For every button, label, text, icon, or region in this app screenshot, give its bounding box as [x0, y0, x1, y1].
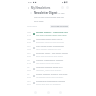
staticText: 9:41 ▪ ▪	[28, 1, 37, 4]
staticText: 4:02	[27, 69, 31, 72]
staticText: each week.	[34, 20, 44, 23]
staticText: Sun	[27, 45, 31, 48]
button[interactable]: Mon	[25, 30, 71, 37]
button[interactable]: Fri	[25, 65, 71, 72]
staticText: Newsletter Digest	[34, 11, 58, 15]
staticText: Sun	[27, 52, 31, 55]
button[interactable]: Back	[27, 6, 30, 9]
staticText: ▴ ● ▮	[62, 1, 68, 4]
staticText: ‹	[28, 6, 29, 9]
staticText: Sat	[27, 59, 30, 62]
staticText: Front-end and UX insights	[36, 83, 61, 86]
staticText: Fri	[27, 66, 30, 69]
staticText: Mon	[27, 38, 32, 41]
staticText: 9:12	[27, 34, 31, 37]
staticText: Hacker Newsletter weekly	[36, 59, 64, 62]
staticText: Language news and samples	[36, 76, 64, 79]
staticText: Fri	[27, 73, 30, 76]
staticText: Stay on top of the stories that you foll…	[34, 16, 69, 19]
staticText: Kotlin Weekly #398 is out now	[36, 73, 68, 76]
staticText: Tech stories picked for you	[36, 48, 62, 51]
staticText: 12 May 2024	[58, 12, 69, 15]
staticText: 5:18	[27, 62, 31, 65]
button[interactable]: Thu	[25, 79, 71, 86]
staticText: Mon	[27, 31, 32, 34]
staticText: Design Weekly · New issue out	[36, 31, 68, 34]
staticText: Business news in five minutes	[36, 41, 64, 44]
staticText: Morning Brew sent you a digest	[36, 38, 69, 41]
staticText: 7:55	[27, 48, 31, 51]
staticText: Best new products this week	[36, 55, 63, 58]
button[interactable]: Sat	[25, 58, 71, 65]
staticText: 2:21	[27, 83, 31, 86]
staticText: 6:30	[27, 55, 31, 58]
staticText: Product Hunt · Top picks today	[36, 52, 68, 55]
staticText: My Newsletters	[31, 6, 51, 10]
button[interactable]: MANAGE SOURCES	[50, 25, 69, 28]
staticText: Libraries, tools and articles	[36, 69, 62, 72]
staticText: The day's design news and ideas	[36, 34, 67, 37]
staticText: 8:40	[27, 41, 31, 44]
button[interactable]: Mon	[25, 37, 71, 44]
staticText: The Verge Daily newsletter	[36, 45, 64, 48]
staticText: Thu	[27, 80, 31, 83]
staticText: Smashing Magazine update	[36, 80, 65, 83]
staticText: Subscribed	[27, 25, 37, 28]
button[interactable]: Sun	[25, 44, 71, 51]
staticText: MANAGE SOURCES	[51, 25, 68, 28]
staticText: 3:44	[27, 76, 31, 79]
button[interactable]: Sun	[25, 51, 71, 58]
staticText: Top posts from this week	[36, 62, 60, 65]
button[interactable]: Fri	[25, 72, 71, 79]
staticText: Android Weekly issue 612	[36, 66, 63, 69]
